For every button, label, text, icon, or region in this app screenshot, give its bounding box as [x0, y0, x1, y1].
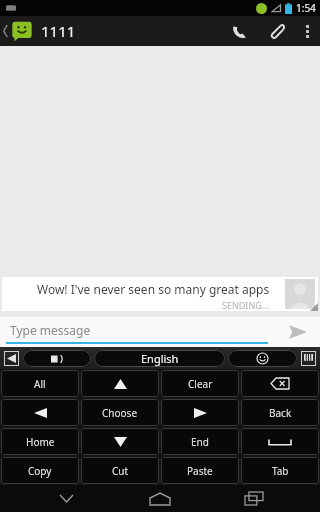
staticText: Paste [187, 464, 213, 478]
button[interactable]: Recent apps [226, 485, 282, 512]
button[interactable]: Back [241, 399, 319, 426]
staticText: Clear [188, 377, 213, 391]
staticText: Cut [112, 464, 129, 478]
button[interactable]: Attach [258, 16, 294, 46]
button[interactable]: Type message [0, 317, 276, 347]
button[interactable]: Send [276, 317, 320, 347]
button[interactable] [23, 350, 91, 367]
button[interactable]: All [1, 370, 79, 397]
button[interactable]: Home [132, 485, 188, 512]
button[interactable]: More options [294, 16, 320, 46]
button[interactable]: Clear [161, 370, 239, 397]
button[interactable]: Keyboard layout [300, 350, 317, 367]
button[interactable]: Back to conversations [0, 20, 35, 42]
button[interactable]: English [94, 350, 225, 367]
staticText: Choose [102, 406, 138, 420]
staticText: Copy [28, 464, 52, 478]
button[interactable]: up [81, 370, 159, 397]
button[interactable]: Copy [1, 457, 79, 484]
staticText: Wow! I've never seen so many great apps [37, 281, 270, 297]
button[interactable]: Home [1, 428, 79, 455]
staticText: Back [269, 406, 292, 420]
staticText: Tab [272, 464, 289, 478]
button[interactable]: space [241, 428, 319, 455]
button[interactable]: right [161, 399, 239, 426]
button[interactable]: left [1, 399, 79, 426]
button[interactable]: End [161, 428, 239, 455]
button[interactable]: Paste [161, 457, 239, 484]
staticText: 1111 [41, 21, 76, 41]
staticText: SENDING... [222, 299, 270, 311]
staticText: English [141, 351, 179, 366]
button[interactable]: Switch input [3, 350, 20, 367]
button[interactable]: Wow! I've never seen so many great apps [2, 277, 318, 311]
button[interactable]: Choose [81, 399, 159, 426]
button[interactable]: Tab [241, 457, 319, 484]
button[interactable]: Hide keyboard [38, 485, 94, 512]
button[interactable]: Call [222, 16, 258, 46]
button[interactable]: down [81, 428, 159, 455]
button[interactable] [228, 350, 297, 367]
staticText: 1:54 [296, 1, 316, 15]
staticText: End [191, 435, 209, 449]
button[interactable]: del [241, 370, 319, 397]
staticText: Home [26, 435, 55, 449]
button[interactable]: Cut [81, 457, 159, 484]
staticText: All [34, 377, 46, 391]
staticText: Type message [10, 322, 91, 338]
